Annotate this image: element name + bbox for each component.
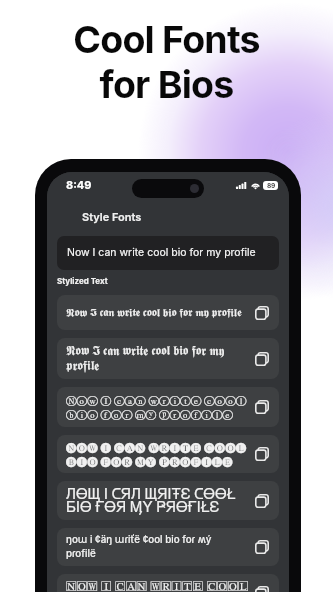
button[interactable]: 🄽🄾🅆 🄸 🄲🄰🄽 🅆🅁🄸🅃🄴 🄲🄾🄾🄻 🄱🄸🄾 🄵🄾🅁 🄼🅈 🄿🅁🄾🄵🄸🄻🄴 <box>57 574 279 592</box>
button[interactable]: 🅝🅞🅦 🅘 🅒🅐🅝 🅦🅡🅘🅣🅔 🅒🅞🅞🅛 🅑🅘🅞 🅕🅞🅡 🅜🅨 🅟🅡🅞🅕🅘🅛🅔 <box>57 435 279 473</box>
button[interactable]: Copy <box>253 584 271 592</box>
button[interactable]: Copy <box>253 492 271 510</box>
button[interactable]: Copy <box>253 398 271 416</box>
button[interactable]: Copy <box>253 304 271 322</box>
button[interactable]: Copy <box>253 350 271 368</box>
staticText: 🅝🅞🅦 🅘 🅒🅐🅝 🅦🅡🅘🅣🅔 🅒🅞🅞🅛 🅑🅘🅞 🅕🅞🅡 🅜🅨 🅟🅡🅞🅕🅘🅛🅔 <box>66 442 249 467</box>
staticText: Cool Fonts for Bios <box>0 17 333 107</box>
button[interactable]: 𝕹𝖔𝖜 𝕴 𝖈𝖆𝖓 𝖜𝖗𝖎𝖙𝖊 𝖈𝖔𝖔𝖑 𝖇𝖎𝖔 𝖋𝖔𝖗 𝖒𝖞 𝖕𝖗𝖔𝖋𝖎𝖑𝖊 <box>57 295 279 330</box>
staticText: Stylized Text <box>57 276 108 286</box>
staticText: 🄽🄾🅆 🄸 🄲🄰🄽 🅆🅁🄸🅃🄴 🄲🄾🄾🄻 🄱🄸🄾 🄵🄾🅁 🄼🅈 🄿🅁🄾🄵🄸🄻🄴 <box>66 579 249 592</box>
button[interactable]: Now I can write cool bio for my profile <box>57 236 279 270</box>
button[interactable]: ŋoա i ¢äŋ աɾiťë ¢ool bio foɾ ʍý pɾofilë <box>57 528 279 566</box>
button[interactable]: Ⓝⓞⓦ Ⓘ ⓒⓐⓝ ⓦⓡⓘⓣⓔ ⓒⓞⓞⓛ ⓑⓘⓞ ⓕⓞⓡ ⓜⓨ ⓟⓡⓞⓕⓘⓛⓔ <box>57 387 279 427</box>
staticText: ЛӨЩ I ϹЯЛ ЩЯIŦƐ ϹӨӨŁ БIӨ ҒӨЯ ӍҮ ҎЯӨҒIŁƐ <box>66 487 249 515</box>
button[interactable]: 𝕹𝖔𝖜 𝕴 𝖈𝖆𝖓 𝖜𝖗𝖎𝖙𝖊 𝖈𝖔𝖔𝖑 𝖇𝖎𝖔 𝖋𝖔𝖗 𝖒𝖞 𝖕𝖗𝖔𝖋𝖎𝖑𝖊 <box>57 338 279 379</box>
staticText: ŋoա i ¢äŋ աɾiťë ¢ool bio foɾ ʍý pɾofilë <box>66 534 249 560</box>
button[interactable]: ЛӨЩ I ϹЯЛ ЩЯIŦƐ ϹӨӨŁ БIӨ ҒӨЯ ӍҮ ҎЯӨҒIŁƐ <box>57 481 279 520</box>
staticText: 89 <box>267 182 275 190</box>
staticText: 𝕹𝖔𝖜 𝕴 𝖈𝖆𝖓 𝖜𝖗𝖎𝖙𝖊 𝖈𝖔𝖔𝖑 𝖇𝖎𝖔 𝖋𝖔𝖗 𝖒𝖞 𝖕𝖗𝖔𝖋𝖎𝖑𝖊 <box>66 345 249 372</box>
staticText: Ⓝⓞⓦ Ⓘ ⓒⓐⓝ ⓦⓡⓘⓣⓔ ⓒⓞⓞⓛ ⓑⓘⓞ ⓕⓞⓡ ⓜⓨ ⓟⓡⓞⓕⓘⓛⓔ <box>66 395 249 420</box>
button[interactable]: Copy <box>253 445 271 463</box>
staticText: Style Fonts <box>82 210 142 223</box>
staticText: 8:49 <box>66 178 92 191</box>
button[interactable]: Copy <box>253 538 271 556</box>
staticText: Now I can write cool bio for my profile <box>67 246 256 259</box>
staticText: 𝕹𝖔𝖜 𝕴 𝖈𝖆𝖓 𝖜𝖗𝖎𝖙𝖊 𝖈𝖔𝖔𝖑 𝖇𝖎𝖔 𝖋𝖔𝖗 𝖒𝖞 𝖕𝖗𝖔𝖋𝖎𝖑𝖊 <box>66 307 249 318</box>
